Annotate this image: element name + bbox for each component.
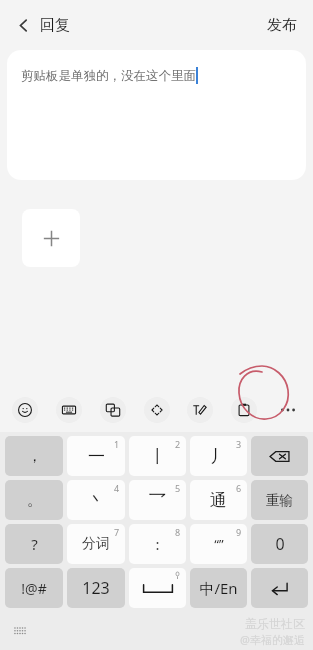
staticText: 4 (114, 482, 120, 494)
staticText: “” (214, 535, 224, 553)
button[interactable]: 丨 (129, 436, 186, 476)
button[interactable]: Space (129, 568, 186, 608)
staticText: 。 (27, 491, 42, 510)
button[interactable]: Backspace (251, 436, 308, 476)
staticText: 盖乐世社区 (245, 616, 305, 631)
button[interactable]: Add image (22, 209, 80, 267)
button[interactable]: “” (190, 524, 247, 564)
staticText: 123 (82, 577, 110, 599)
staticText: 丿 (210, 446, 227, 467)
staticText: ， (27, 447, 42, 466)
staticText: 中/En (199, 578, 238, 598)
button[interactable]: Move keyboard (144, 397, 170, 423)
button[interactable]: Hide keyboard (8, 619, 32, 643)
button[interactable]: Translate (100, 397, 126, 423)
staticText: 发布 (267, 16, 297, 35)
staticText: 9 (236, 526, 242, 538)
button[interactable]: : (129, 524, 186, 564)
button[interactable]: 一 (67, 436, 125, 476)
staticText: 0 (275, 533, 285, 555)
staticText: 回复 (40, 16, 70, 35)
button[interactable]: Keyboard (56, 397, 82, 423)
staticText: 5 (175, 482, 181, 494)
button[interactable]: ， (5, 436, 63, 476)
button[interactable]: Enter (251, 568, 308, 608)
staticText: 3 (236, 438, 242, 450)
button[interactable]: 。 (5, 480, 63, 520)
staticText: 丨 (149, 446, 166, 467)
button[interactable]: 通 (190, 480, 247, 520)
staticText: 8 (175, 526, 181, 538)
button[interactable]: 0 (251, 524, 308, 564)
staticText: 乛 (149, 490, 166, 511)
staticText: 6 (236, 482, 242, 494)
button[interactable]: 中/En (190, 568, 247, 608)
staticText: 一 (88, 446, 105, 467)
staticText: 1 (114, 438, 120, 450)
staticText: 丶 (88, 490, 105, 511)
staticText: 分词 (82, 535, 110, 553)
button[interactable]: 丿 (190, 436, 247, 476)
staticText: 重输 (266, 492, 293, 509)
staticText: @幸福的邂逅 (240, 632, 305, 647)
staticText: 通 (210, 490, 227, 511)
staticText: ? (31, 534, 38, 554)
button[interactable]: Clipboard (231, 397, 257, 423)
button[interactable]: 回复 (10, 8, 76, 43)
staticText: : (155, 534, 160, 554)
staticText: 2 (175, 438, 181, 450)
button[interactable]: 剪贴板是单独的，没在这个里面 (7, 50, 306, 180)
button[interactable]: Handwriting (187, 397, 213, 423)
staticText: 剪贴板是单独的，没在这个里面 (21, 68, 196, 84)
staticText: !@# (21, 579, 47, 598)
button[interactable]: 发布 (261, 8, 303, 43)
button[interactable]: 乛 (129, 480, 186, 520)
button[interactable]: 重输 (251, 480, 308, 520)
button[interactable]: 123 (67, 568, 125, 608)
button[interactable]: 丶 (67, 480, 125, 520)
staticText: 7 (114, 526, 120, 538)
button[interactable]: !@# (5, 568, 63, 608)
button[interactable]: ? (5, 524, 63, 564)
button[interactable]: 分词 (67, 524, 125, 564)
button[interactable]: More (275, 397, 301, 423)
button[interactable]: Emoji (12, 397, 38, 423)
